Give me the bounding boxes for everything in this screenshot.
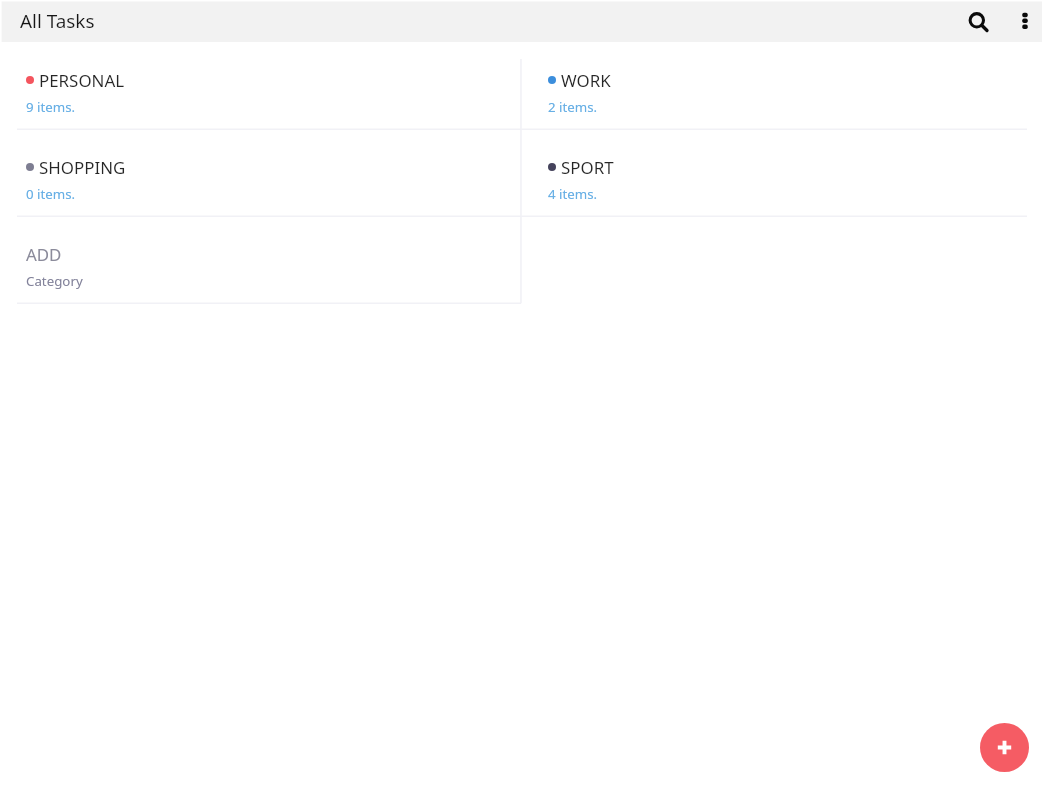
- staticText: PERSONAL: [39, 69, 125, 92]
- staticText: 9 items.: [26, 98, 76, 116]
- staticText: All Tasks: [20, 8, 95, 34]
- button[interactable]: More options: [1004, 0, 1044, 42]
- staticText: 0 items.: [26, 185, 76, 203]
- staticText: SPORT: [561, 156, 614, 179]
- staticText: WORK: [561, 69, 611, 92]
- staticText: 4 items.: [548, 185, 598, 203]
- button[interactable]: ADD: [0, 216, 521, 303]
- button[interactable]: SPORT: [521, 129, 1044, 216]
- button[interactable]: Search: [958, 0, 1004, 42]
- staticText: ADD: [26, 243, 62, 266]
- button[interactable]: WORK: [521, 42, 1044, 129]
- staticText: SHOPPING: [39, 156, 126, 179]
- staticText: 2 items.: [548, 98, 598, 116]
- button[interactable]: SHOPPING: [0, 129, 521, 216]
- button[interactable]: Add task: [980, 723, 1029, 772]
- button[interactable]: PERSONAL: [0, 42, 521, 129]
- staticText: Category: [26, 272, 83, 290]
